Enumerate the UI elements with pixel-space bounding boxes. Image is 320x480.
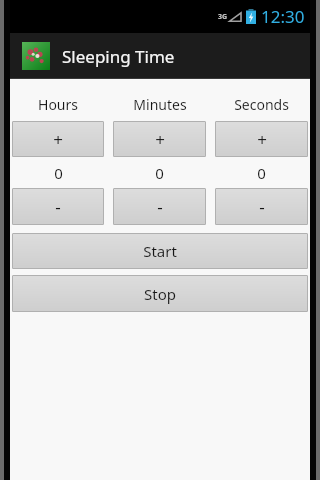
button[interactable]: Stop (12, 275, 308, 312)
staticText: - (259, 195, 265, 218)
staticText: + (257, 128, 267, 151)
staticText: - (55, 195, 61, 218)
staticText: Seconds (234, 95, 289, 114)
staticText: 3G (218, 12, 228, 22)
staticText: + (53, 128, 63, 151)
staticText: Stop (144, 284, 176, 304)
staticText: - (157, 195, 163, 218)
button[interactable]: Start (12, 233, 308, 269)
staticText: Start (143, 241, 177, 261)
button[interactable]: Increase seconds (215, 121, 308, 157)
button[interactable]: Decrease minutes (113, 188, 206, 225)
button[interactable]: Increase hours (12, 121, 104, 157)
staticText: 0 (257, 163, 266, 183)
staticText: + (155, 128, 165, 151)
staticText: 12:30 (261, 5, 305, 28)
button[interactable]: Increase minutes (113, 121, 206, 157)
other: App icon (22, 42, 50, 70)
staticText: 0 (54, 163, 63, 183)
staticText: Hours (38, 95, 78, 114)
staticText: Minutes (133, 95, 187, 114)
staticText: Sleeping Time (62, 45, 175, 68)
button[interactable]: Decrease hours (12, 188, 104, 225)
button[interactable]: Decrease seconds (215, 188, 308, 225)
staticText: 0 (155, 163, 164, 183)
